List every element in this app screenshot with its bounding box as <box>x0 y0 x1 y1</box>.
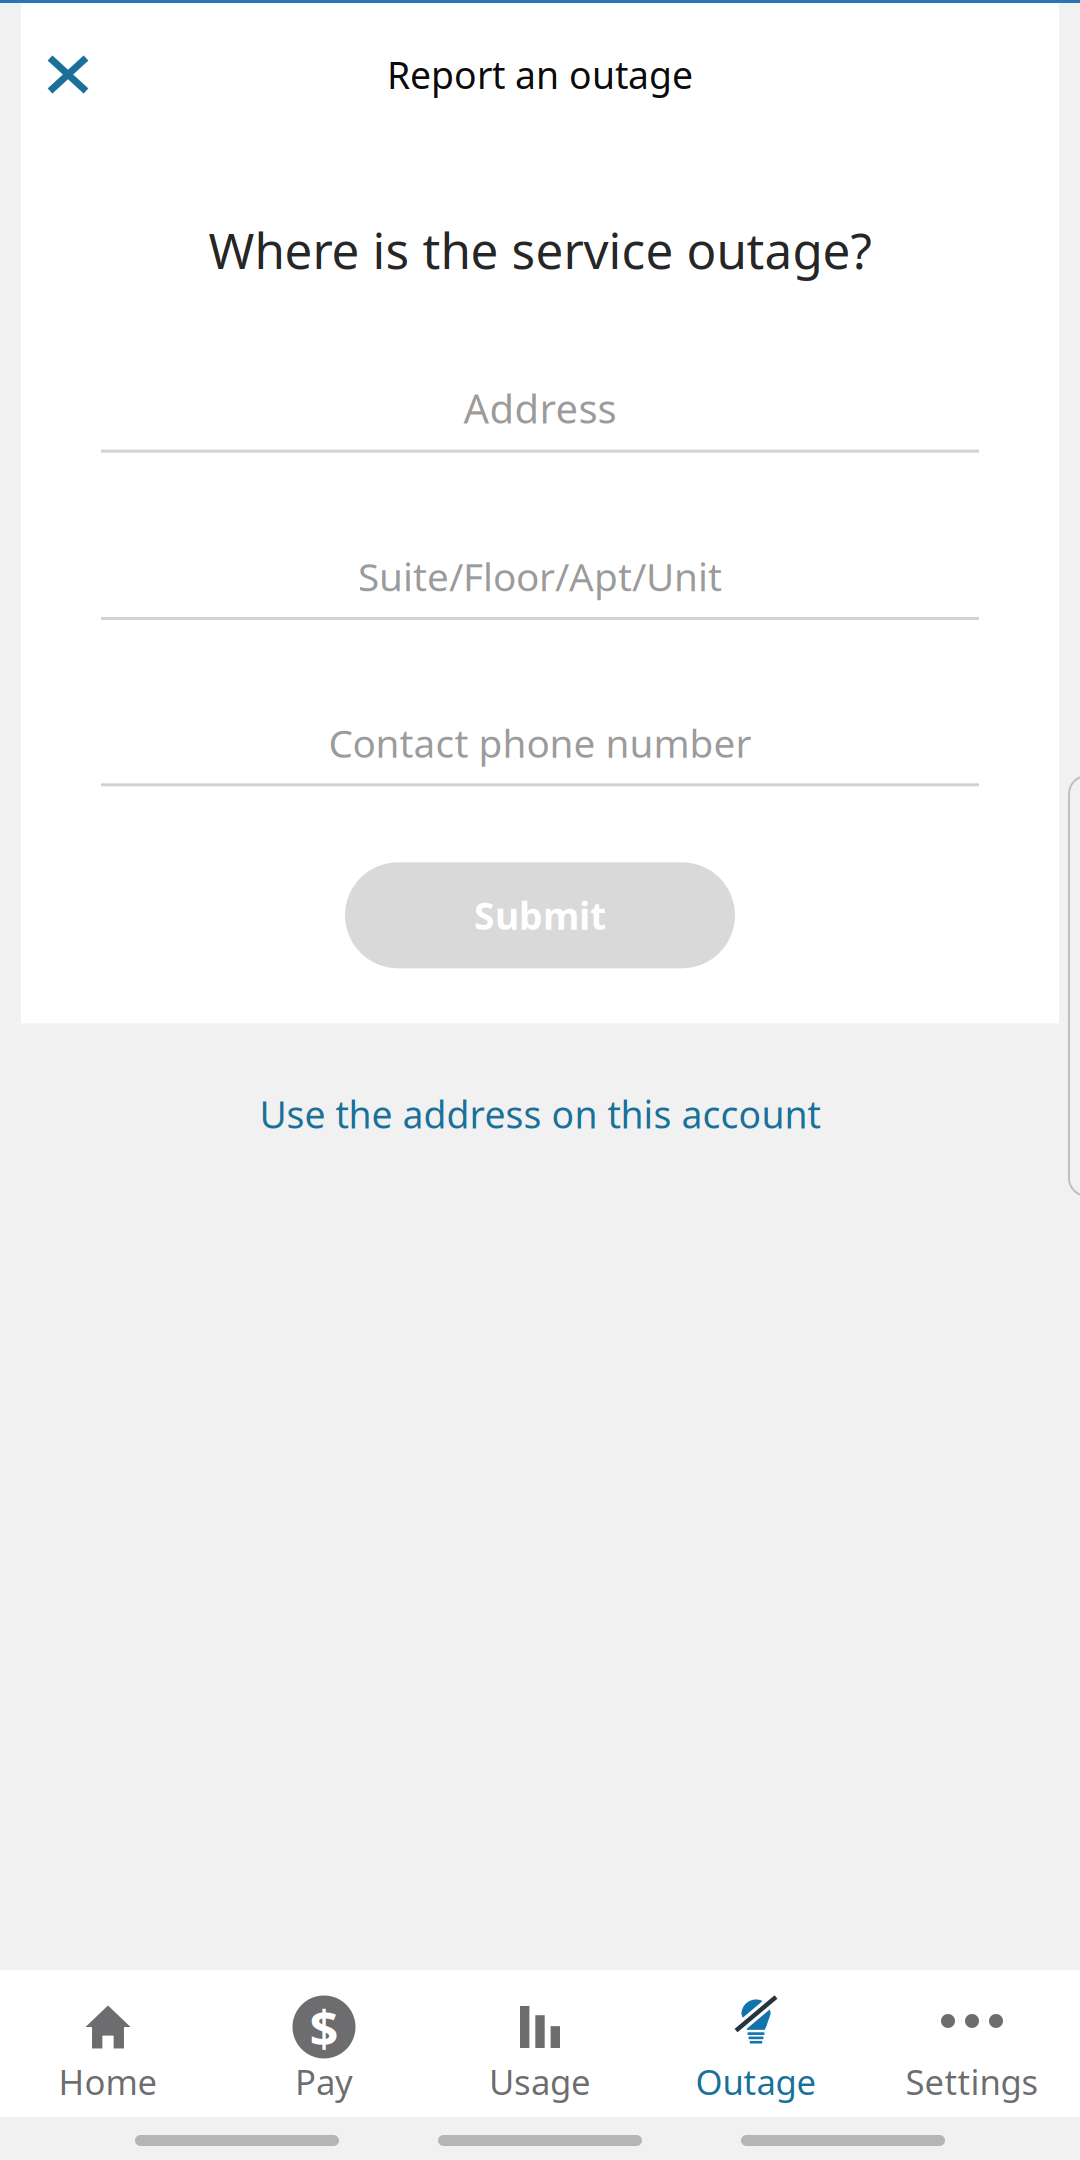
staticText: Home <box>58 2058 157 2104</box>
button[interactable]: Use the address on this account <box>233 1073 846 1155</box>
staticText: Suite/Floor/Apt/Unit <box>358 551 722 602</box>
staticText: Where is the service outage? <box>208 217 871 282</box>
staticText: $ <box>309 1993 338 2061</box>
staticText: Outage <box>695 2058 816 2104</box>
button[interactable]: Outage <box>648 1968 864 2118</box>
button[interactable]: Settings <box>864 1968 1080 2118</box>
staticText: Report an outage <box>387 50 693 99</box>
button[interactable]: Pay <box>216 1968 432 2118</box>
staticText: Pay <box>295 2058 353 2104</box>
button[interactable]: Home <box>0 1968 216 2118</box>
staticText: Submit <box>474 890 606 940</box>
button[interactable]: Submit <box>345 862 735 968</box>
staticText: Address <box>463 381 616 435</box>
button[interactable]: Usage <box>432 1968 648 2118</box>
staticText: Settings <box>905 2058 1038 2104</box>
staticText: Usage <box>489 2058 591 2104</box>
staticText: Use the address on this account <box>259 1089 820 1139</box>
staticText: Contact phone number <box>328 717 751 768</box>
button[interactable]: Close <box>21 29 115 120</box>
